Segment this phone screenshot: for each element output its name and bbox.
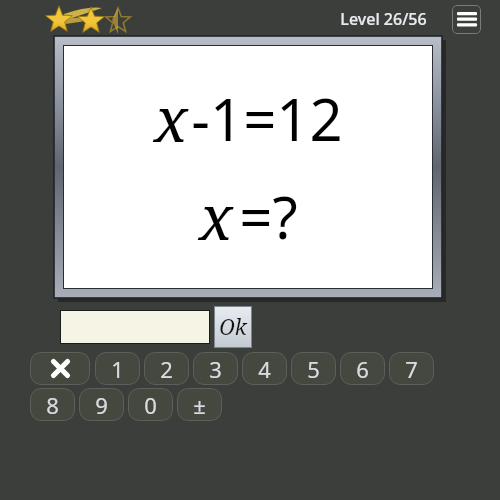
staticText: Ok [219,313,247,342]
button[interactable]: 9 [79,388,124,421]
staticText: Level 26/56 [340,8,427,30]
button[interactable]: 8 [30,388,75,421]
button[interactable]: Ok [214,306,252,348]
staticText: 0 [144,390,157,420]
button[interactable]: 7 [389,352,434,385]
button[interactable]: 6 [340,352,385,385]
staticText: =? [239,177,298,256]
staticText: 7 [405,354,418,384]
staticText: ± [193,390,206,420]
staticText: 3 [209,354,222,384]
button[interactable]: 2 [144,352,189,385]
staticText: 1 [111,354,124,384]
staticText: 9 [95,390,108,420]
staticText: 2 [160,354,173,384]
button[interactable]: 5 [291,352,336,385]
button[interactable]: Clear [30,352,90,385]
button[interactable]: Menu [452,5,481,34]
staticText: 8 [46,390,59,420]
staticText: x [154,76,188,160]
staticText: -1=12 [191,79,343,158]
staticText: 5 [307,354,320,384]
button[interactable]: 1 [95,352,140,385]
button[interactable] [60,310,210,344]
staticText: 4 [258,354,271,384]
staticText: 6 [356,354,369,384]
staticText: x [199,174,233,258]
button[interactable]: 4 [242,352,287,385]
button[interactable]: ± [177,388,222,421]
button[interactable]: 0 [128,388,173,421]
button[interactable]: 3 [193,352,238,385]
